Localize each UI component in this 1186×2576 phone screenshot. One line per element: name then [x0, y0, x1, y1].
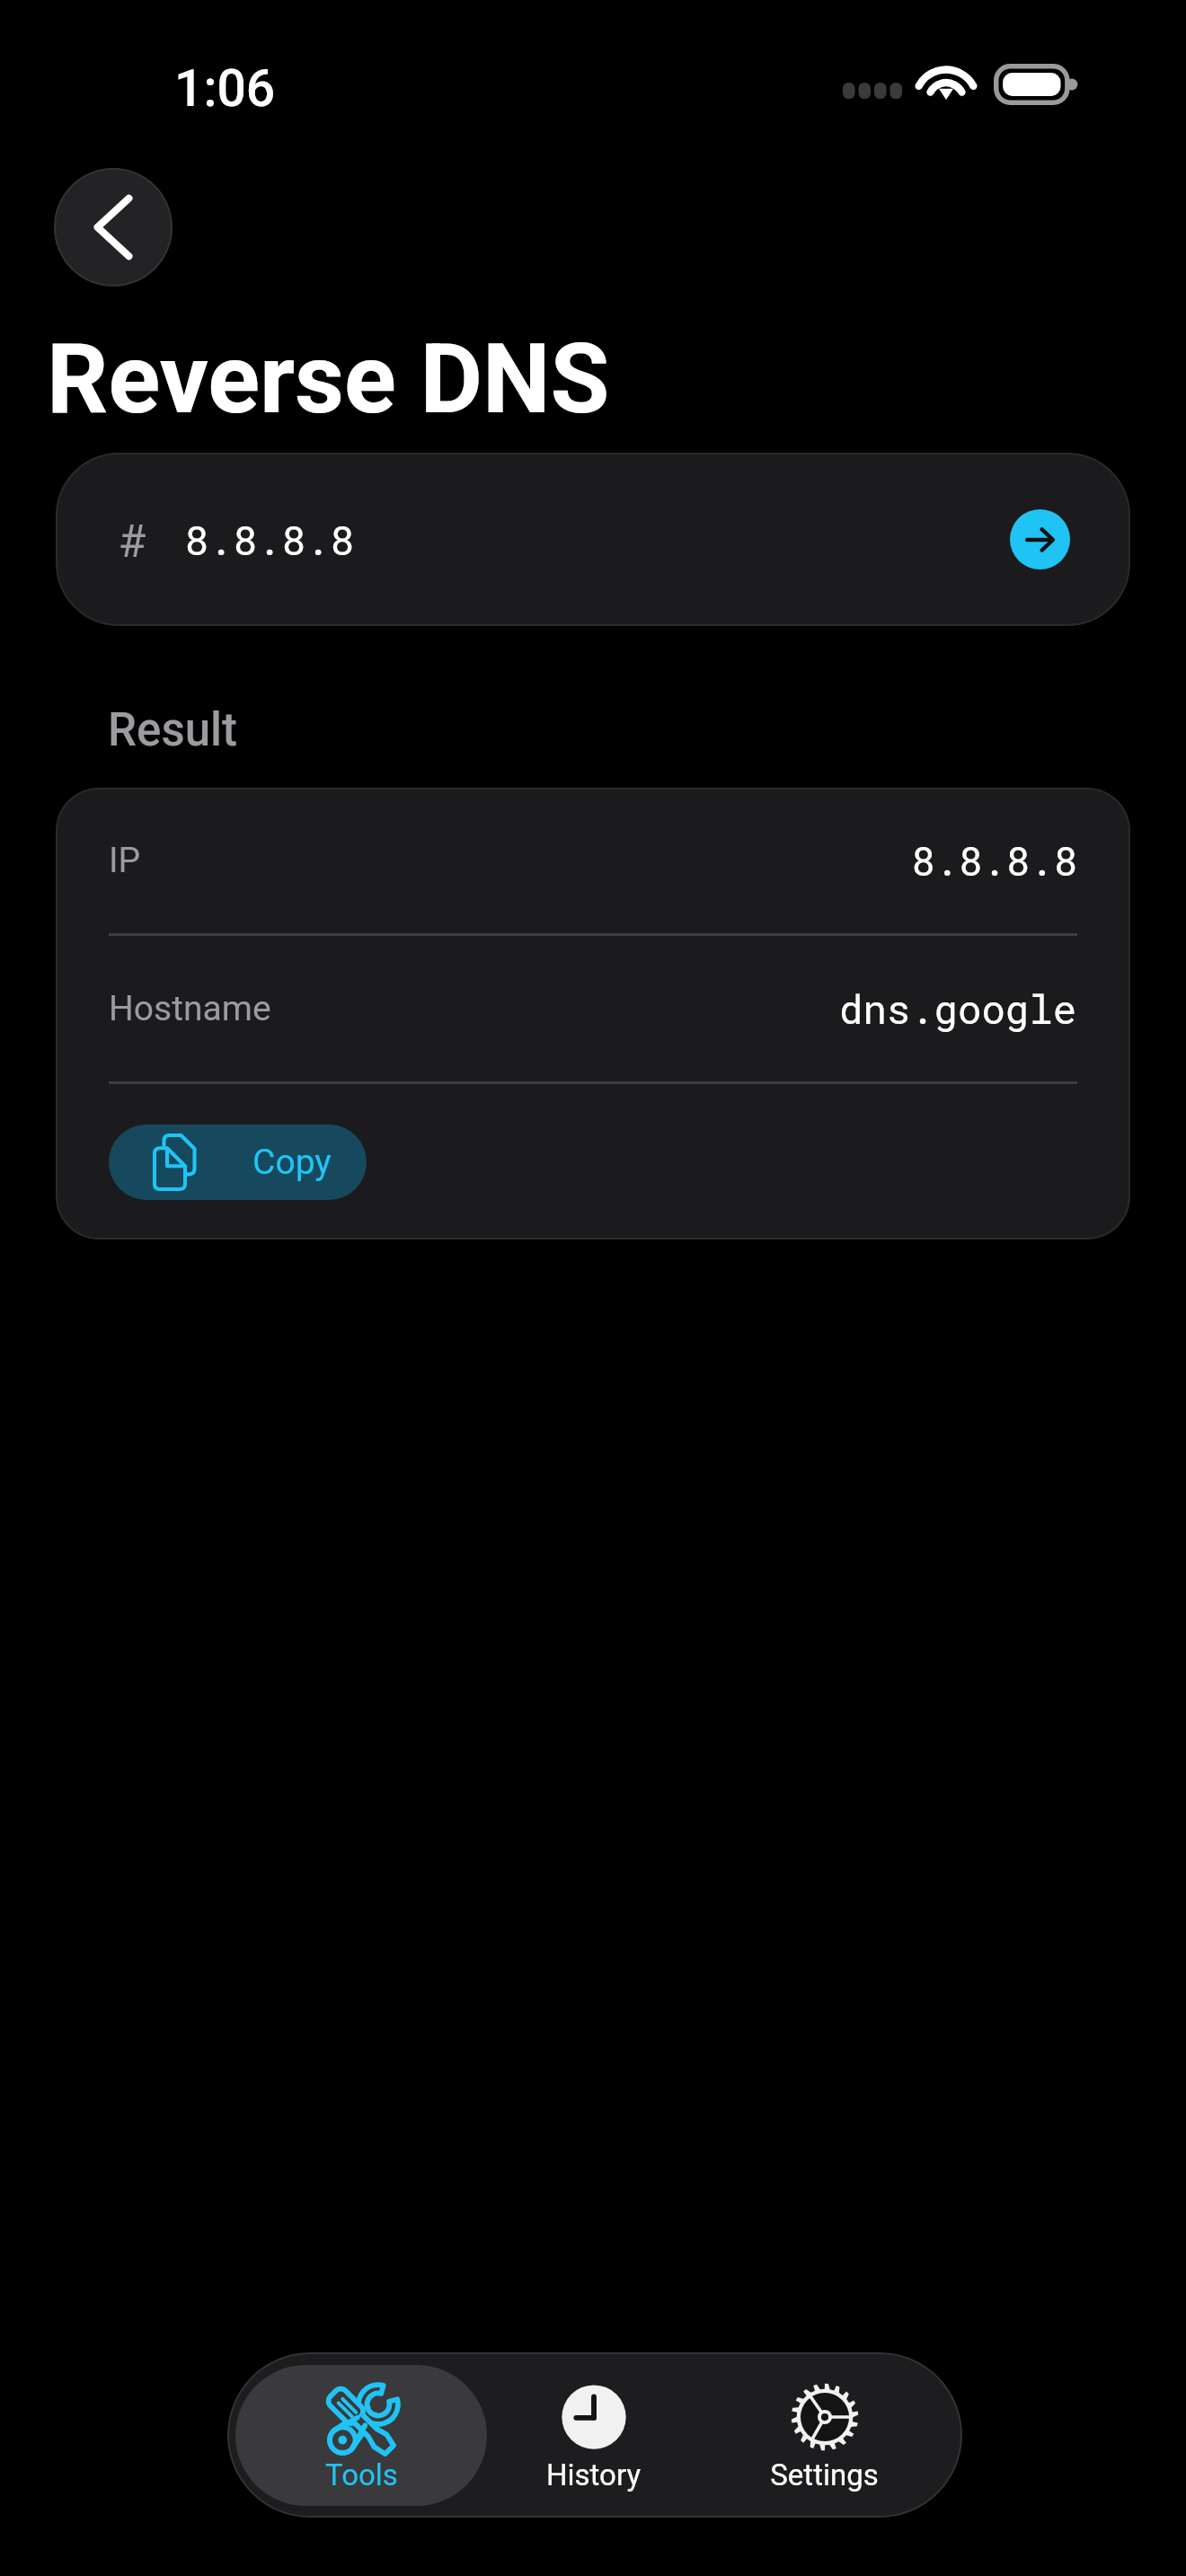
staticText: dns.google	[839, 983, 1077, 1035]
button[interactable]: Back	[54, 168, 173, 287]
staticText: 1:06	[174, 58, 276, 119]
button[interactable]: Copy	[109, 1125, 367, 1200]
button[interactable]: History	[477, 2365, 709, 2506]
button[interactable]: Tools	[235, 2365, 487, 2506]
staticText: Tools	[325, 2457, 398, 2492]
staticText: Reverse DNS	[47, 323, 610, 436]
staticText: Settings	[770, 2457, 879, 2492]
staticText: Result	[108, 703, 238, 757]
staticText: Copy	[252, 1142, 332, 1183]
staticText: #	[119, 510, 147, 569]
button[interactable]: Settings	[708, 2365, 940, 2506]
staticText: Hostname	[109, 988, 271, 1029]
staticText: 8.8.8.8	[184, 513, 355, 566]
staticText: 8.8.8.8	[911, 834, 1077, 887]
staticText: History	[546, 2457, 641, 2492]
staticText: IP	[109, 840, 141, 881]
button[interactable]: #	[56, 453, 1130, 626]
button[interactable]: Lookup	[1010, 509, 1070, 569]
